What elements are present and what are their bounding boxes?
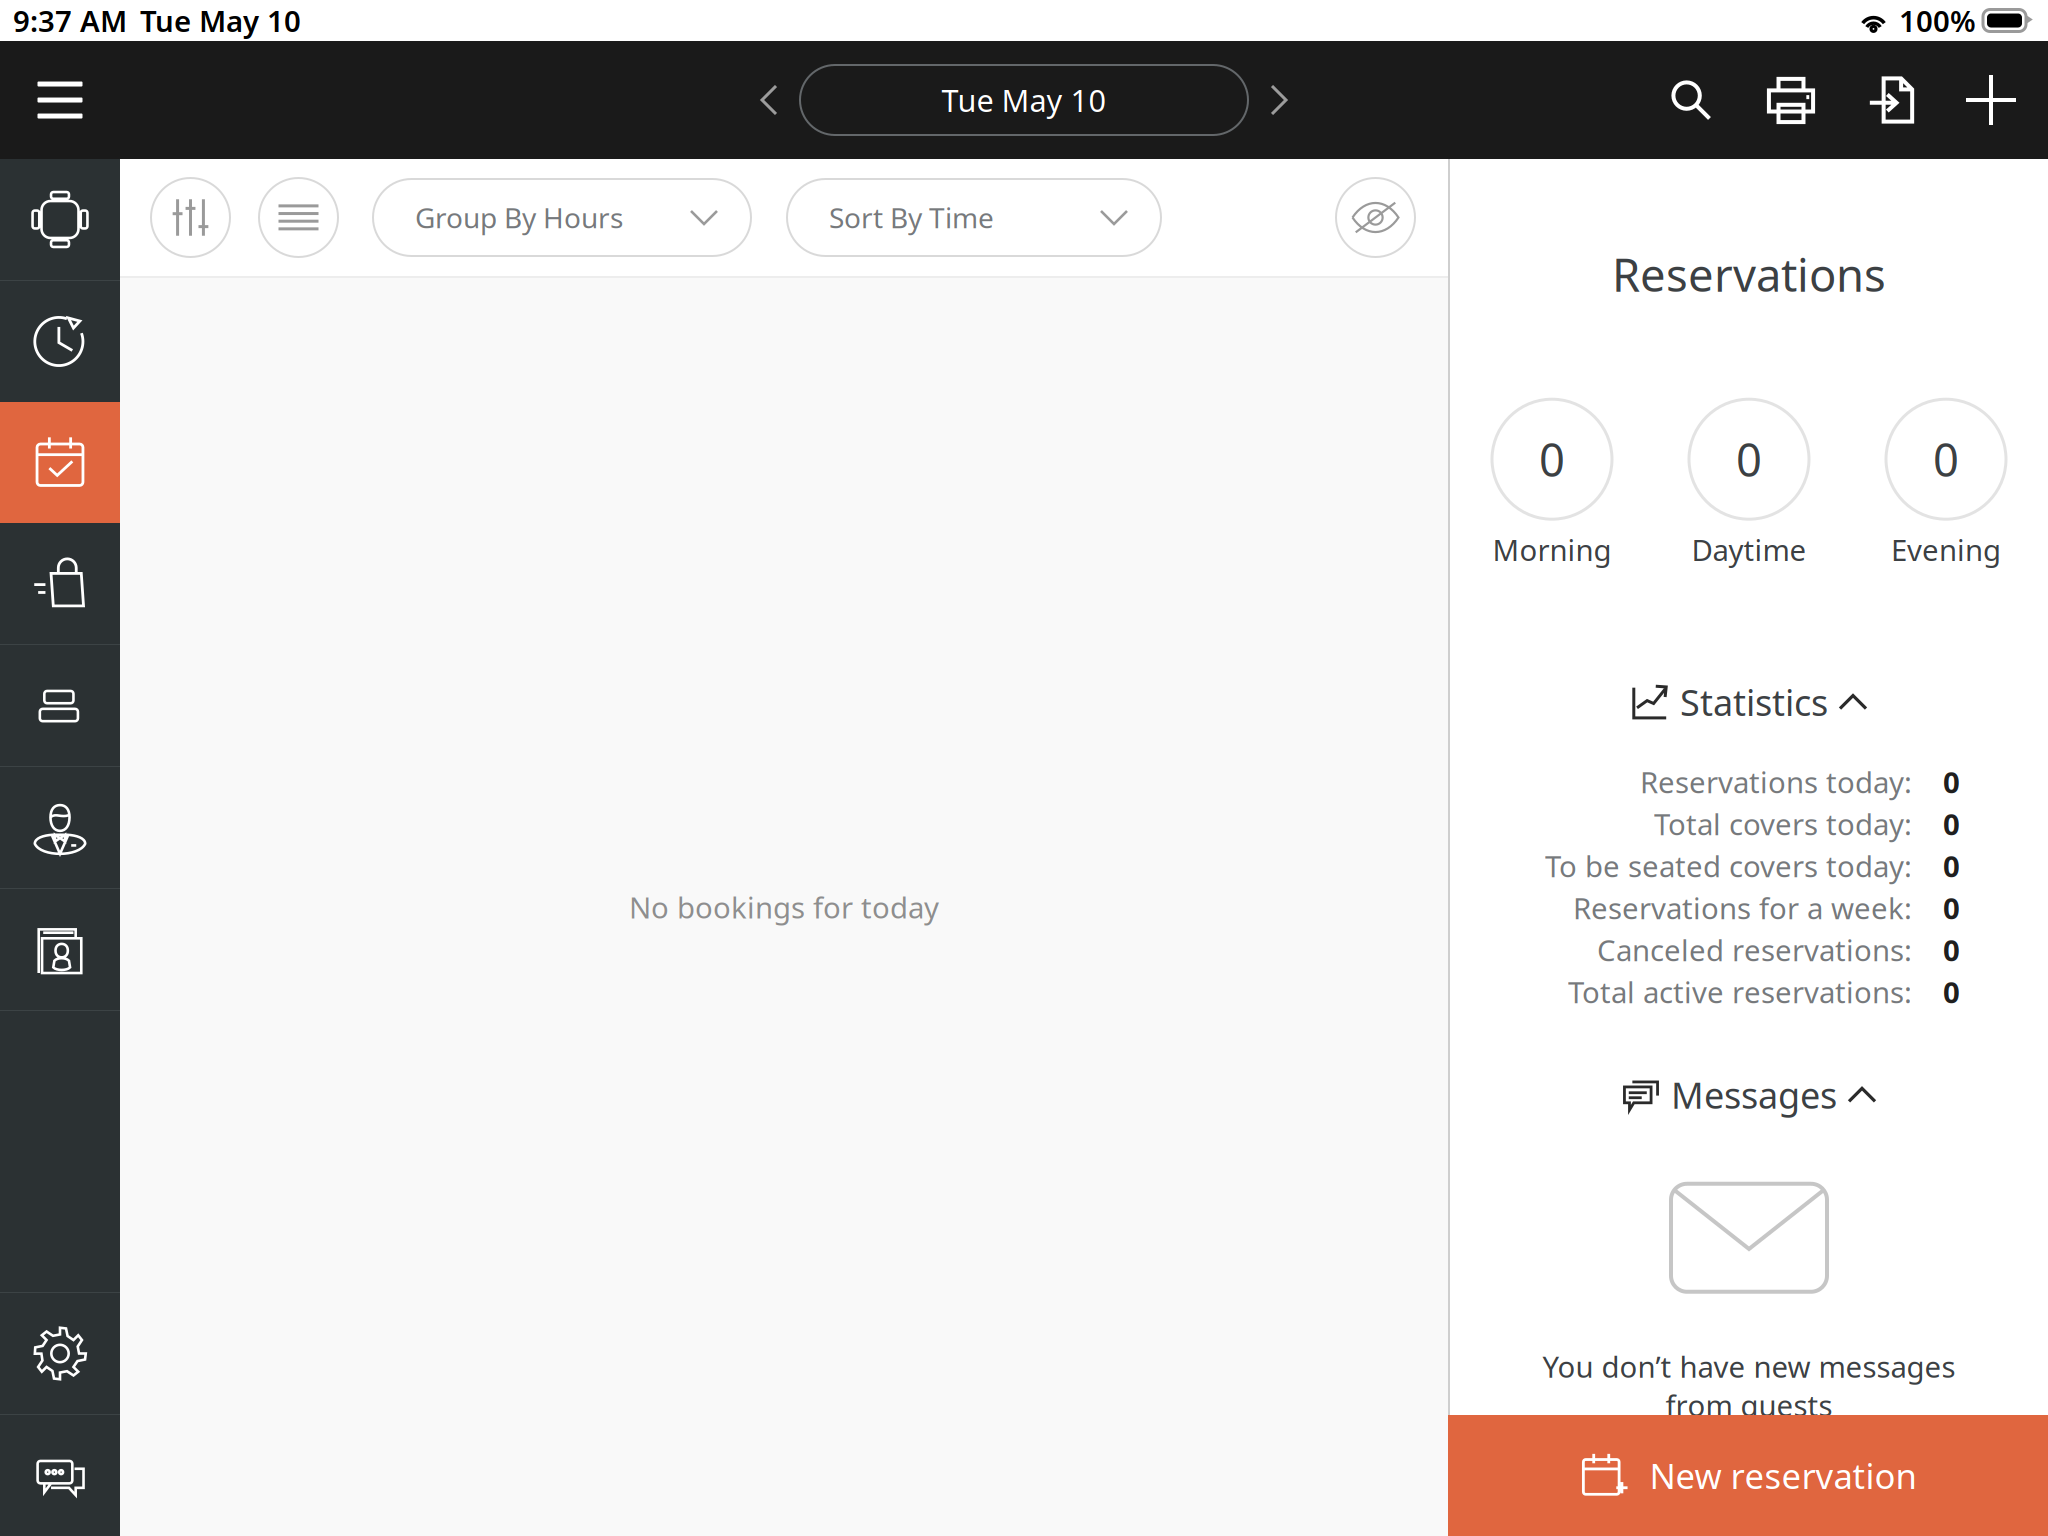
button[interactable]: Settings bbox=[0, 1293, 120, 1414]
button[interactable]: Tue May 10 bbox=[800, 65, 1248, 135]
staticText: 0 bbox=[1933, 429, 1959, 489]
button[interactable]: New reservation bbox=[1450, 1415, 2048, 1536]
staticText: Reservations today: bbox=[1640, 762, 1912, 801]
button[interactable]: Messages bbox=[0, 1415, 120, 1536]
staticText: 0 bbox=[1943, 930, 1960, 969]
button[interactable]: Import bbox=[1866, 72, 1916, 128]
staticText: Reservations for a week: bbox=[1573, 888, 1912, 927]
staticText: Statistics bbox=[1680, 678, 1828, 726]
staticText: New reservation bbox=[1649, 1452, 1916, 1498]
staticText: 0 bbox=[1943, 972, 1960, 1011]
button[interactable]: Staff bbox=[0, 767, 120, 888]
button[interactable]: Previous day bbox=[746, 70, 792, 130]
button[interactable]: Waitlist bbox=[0, 645, 120, 766]
button[interactable]: Takeaway bbox=[0, 523, 120, 644]
button[interactable]: Next day bbox=[1256, 70, 1302, 130]
button[interactable]: Print bbox=[1766, 72, 1816, 128]
staticText: 0 bbox=[1943, 888, 1960, 927]
staticText: 0 bbox=[1736, 429, 1762, 489]
staticText: Evening bbox=[1891, 530, 2001, 569]
button[interactable]: Search bbox=[1666, 72, 1716, 128]
staticText: Tue May 10 bbox=[140, 1, 301, 40]
staticText: 0 bbox=[1539, 429, 1565, 489]
staticText: No bookings for today bbox=[629, 887, 939, 926]
button[interactable]: Group By Hours bbox=[373, 179, 751, 256]
button[interactable]: List view bbox=[259, 178, 338, 257]
button[interactable]: Guest book bbox=[0, 889, 120, 1010]
staticText: Canceled reservations: bbox=[1597, 930, 1912, 969]
staticText: Daytime bbox=[1691, 530, 1806, 569]
button[interactable]: Messages bbox=[1623, 1071, 1875, 1119]
staticText: 0 bbox=[1943, 762, 1960, 801]
staticText: Group By Hours bbox=[415, 199, 623, 236]
staticText: 0 bbox=[1943, 846, 1960, 885]
button[interactable]: Statistics bbox=[1632, 678, 1866, 726]
button[interactable]: History bbox=[0, 281, 120, 402]
staticText: You don’t have new messages bbox=[1542, 1347, 1955, 1386]
staticText: Tue May 10 bbox=[941, 80, 1106, 120]
staticText: Messages bbox=[1671, 1071, 1837, 1119]
button[interactable]: Add reservation bbox=[1966, 72, 2016, 128]
button[interactable]: Filter bbox=[151, 178, 230, 257]
button[interactable]: Hide cancelled bbox=[1336, 178, 1415, 257]
button[interactable]: Menu bbox=[0, 42, 120, 158]
staticText: 0 bbox=[1943, 804, 1960, 843]
staticText: Morning bbox=[1492, 530, 1611, 569]
staticText: Total active reservations: bbox=[1568, 972, 1912, 1011]
button[interactable]: Sort By Time bbox=[787, 179, 1161, 256]
staticText: 100% bbox=[1899, 1, 1976, 40]
staticText: 9:37 AM bbox=[13, 1, 127, 40]
button[interactable]: Floor plan bbox=[0, 159, 120, 280]
staticText: from guests bbox=[1665, 1386, 1832, 1425]
staticText: Total covers today: bbox=[1654, 804, 1912, 843]
staticText: Sort By Time bbox=[829, 199, 994, 236]
staticText: To be seated covers today: bbox=[1545, 846, 1912, 885]
button[interactable]: Reservations bbox=[0, 402, 120, 523]
staticText: Reservations bbox=[1612, 244, 1886, 304]
